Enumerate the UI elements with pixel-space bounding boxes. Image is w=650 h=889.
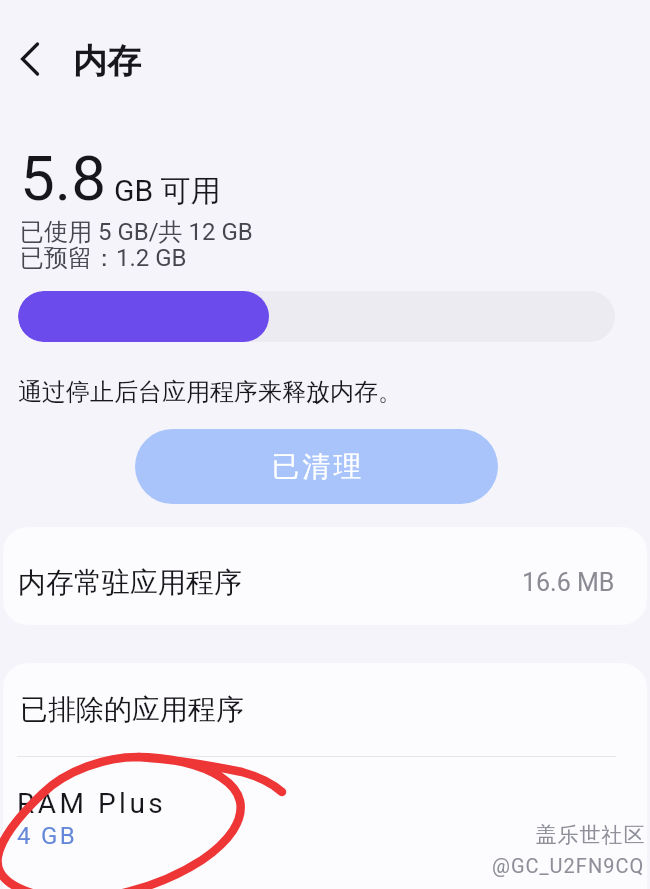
button[interactable]: 内存常驻应用程序 xyxy=(3,527,647,625)
staticText: 5.8 xyxy=(20,142,107,215)
staticText: GB 可用 xyxy=(114,172,221,210)
button[interactable]: RAM Plus xyxy=(3,757,647,850)
staticText: 内存 xyxy=(73,40,141,83)
staticText: 已使用 5 GB/共 12 GB xyxy=(20,217,253,247)
staticText: 已清理 xyxy=(270,449,363,484)
staticText: 16.6 MB xyxy=(522,568,615,597)
staticText: 已排除的应用程序 xyxy=(20,692,244,727)
staticText: 通过停止后台应用程序来释放内存。 xyxy=(18,377,402,407)
staticText: 已预留：1.2 GB xyxy=(20,243,187,273)
button[interactable]: Back xyxy=(2,30,58,86)
staticText: RAM Plus xyxy=(17,787,167,820)
staticText: 4 GB xyxy=(17,822,77,850)
staticText: @GC_U2FN9CQ xyxy=(492,854,645,877)
button[interactable]: 已排除的应用程序 xyxy=(3,663,647,756)
button[interactable]: 已清理 xyxy=(135,429,498,504)
staticText: 内存常驻应用程序 xyxy=(18,565,242,600)
staticText: 盖乐世社区 xyxy=(535,822,645,848)
